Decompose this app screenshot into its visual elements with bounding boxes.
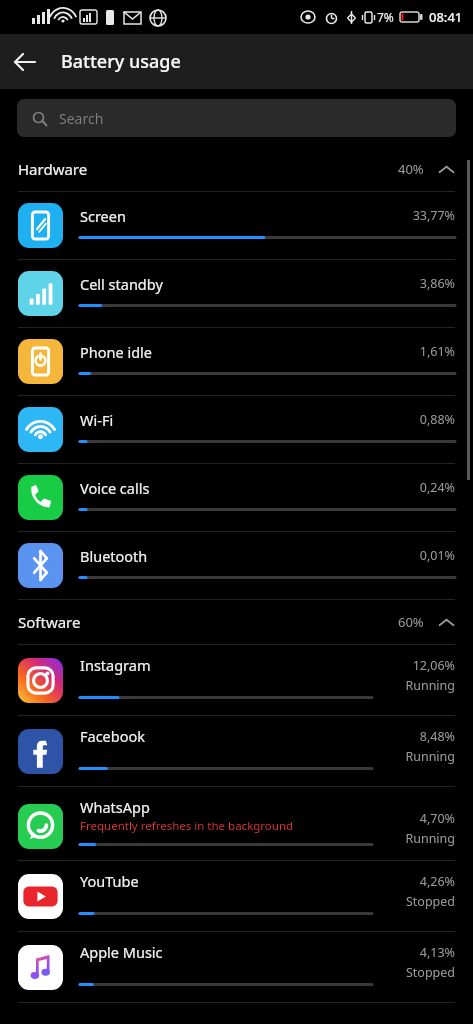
button[interactable]: Screen [0, 192, 473, 259]
button[interactable]: Back [0, 37, 50, 87]
button[interactable]: Instagram [0, 645, 473, 715]
button[interactable]: WhatsApp [0, 787, 473, 860]
staticText: 40% [398, 160, 424, 178]
staticText: Software [18, 612, 81, 632]
staticText: Hardware [18, 159, 88, 179]
staticText: Running [0, 830, 455, 847]
staticText: 4,13% [0, 944, 455, 961]
staticText: Stopped [0, 964, 455, 981]
staticText: 4,26% [0, 873, 455, 890]
staticText: Wi-Fi [80, 410, 114, 430]
staticText: Apple Music [80, 942, 163, 962]
staticText: Battery usage [61, 49, 181, 74]
staticText: Phone idle [80, 342, 152, 362]
staticText: 3,86% [0, 275, 455, 292]
staticText: Running [0, 677, 455, 694]
staticText: 33,77% [0, 207, 455, 224]
staticText: 0,01% [0, 547, 455, 564]
staticText: Search [59, 109, 104, 128]
staticText: 08:41 [429, 8, 463, 26]
staticText: WhatsApp [80, 797, 150, 817]
staticText: 0,24% [0, 479, 455, 496]
button[interactable]: Cell standby [0, 260, 473, 327]
button[interactable]: Apple Music [0, 932, 473, 1002]
button[interactable]: Search [17, 99, 456, 137]
staticText: Running [0, 748, 455, 765]
staticText: Facebook [80, 726, 146, 746]
button[interactable]: Voice calls [0, 464, 473, 531]
button[interactable]: Wi-Fi [0, 396, 473, 463]
button[interactable]: Bluetooth [0, 532, 473, 599]
staticText: Bluetooth [80, 546, 148, 566]
staticText: Screen [80, 206, 126, 226]
staticText: 12,06% [0, 657, 455, 674]
button[interactable]: Hardware [0, 147, 473, 191]
staticText: Cell standby [80, 274, 163, 294]
staticText: 7% [377, 9, 394, 25]
staticText: 0,88% [0, 411, 455, 428]
staticText: Voice calls [80, 478, 150, 498]
button[interactable]: Phone idle [0, 328, 473, 395]
staticText: Frequently refreshes in the background [80, 818, 294, 834]
button[interactable]: Software [0, 600, 473, 644]
staticText: 1,61% [0, 343, 455, 360]
staticText: 8,48% [0, 728, 455, 745]
staticText: Instagram [80, 655, 151, 675]
button[interactable]: YouTube [0, 861, 473, 931]
staticText: YouTube [80, 871, 139, 891]
staticText: 60% [398, 613, 424, 631]
staticText: Stopped [0, 893, 455, 910]
staticText: 4,70% [0, 810, 455, 827]
button[interactable]: Facebook [0, 716, 473, 786]
